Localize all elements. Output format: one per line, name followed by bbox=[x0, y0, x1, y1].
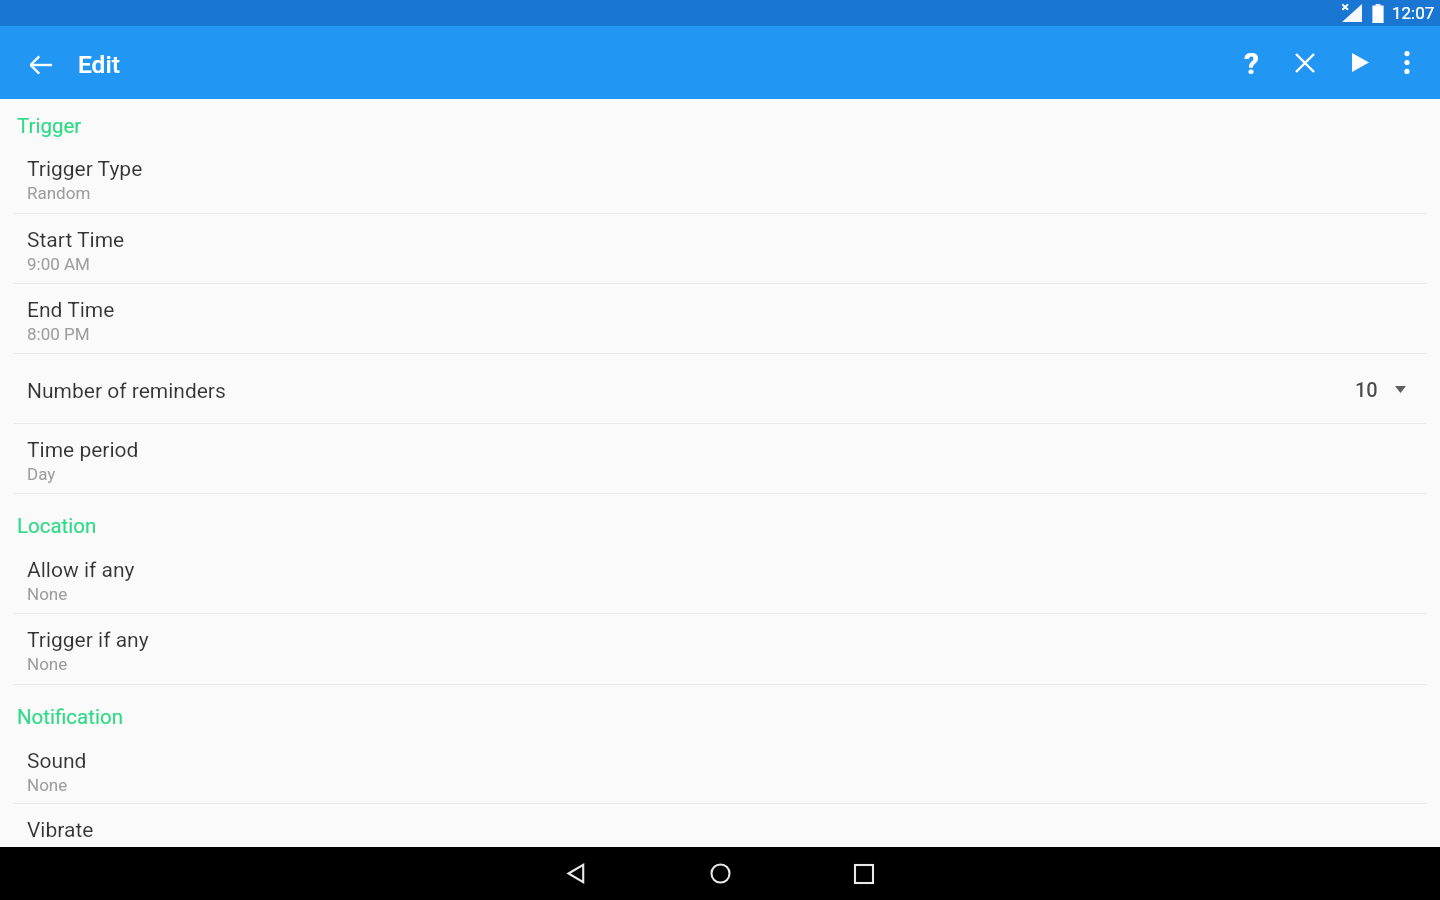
staticText: Sound bbox=[27, 749, 87, 774]
button[interactable]: Time period bbox=[0, 424, 1440, 494]
button[interactable]: Discard bbox=[1278, 26, 1332, 99]
staticText: Random bbox=[27, 183, 91, 203]
button[interactable]: Home bbox=[660, 847, 780, 900]
button[interactable]: Number of reminders bbox=[0, 354, 1440, 424]
staticText: Trigger if any bbox=[27, 628, 149, 653]
button[interactable]: Back bbox=[516, 847, 636, 900]
button[interactable]: Navigate up bbox=[12, 26, 70, 99]
staticText: 12:07 bbox=[1392, 3, 1435, 23]
button[interactable]: Start Time bbox=[0, 214, 1440, 284]
staticText: ? bbox=[1244, 46, 1259, 81]
button[interactable]: Trigger Type bbox=[0, 143, 1440, 214]
staticText: Notification bbox=[17, 705, 123, 729]
staticText: Number of reminders bbox=[27, 379, 226, 404]
staticText: Allow if any bbox=[27, 558, 135, 583]
staticText: Time period bbox=[27, 438, 139, 463]
staticText: Location bbox=[17, 514, 97, 538]
button[interactable]: More options bbox=[1380, 26, 1434, 99]
button[interactable]: Trigger if any bbox=[0, 614, 1440, 685]
button[interactable]: Run bbox=[1333, 26, 1387, 99]
staticText: None bbox=[27, 584, 68, 604]
button[interactable]: Vibrate bbox=[0, 804, 1440, 847]
staticText: Edit bbox=[78, 50, 120, 79]
staticText: Trigger bbox=[17, 114, 82, 138]
staticText: Start Time bbox=[27, 228, 125, 253]
staticText: End Time bbox=[27, 298, 115, 323]
staticText: Vibrate bbox=[27, 818, 94, 843]
staticText: None bbox=[27, 654, 68, 674]
button[interactable]: Sound bbox=[0, 735, 1440, 804]
staticText: Trigger Type bbox=[27, 157, 143, 182]
staticText: Day bbox=[27, 464, 56, 484]
button[interactable]: End Time bbox=[0, 284, 1440, 354]
staticText: 10 bbox=[1355, 378, 1378, 401]
button[interactable]: Recent apps bbox=[804, 847, 924, 900]
staticText: 8:00 PM bbox=[27, 324, 90, 344]
button[interactable]: Help bbox=[1224, 26, 1278, 99]
button[interactable]: Allow if any bbox=[0, 544, 1440, 614]
staticText: None bbox=[27, 775, 68, 795]
staticText: 9:00 AM bbox=[27, 254, 90, 274]
